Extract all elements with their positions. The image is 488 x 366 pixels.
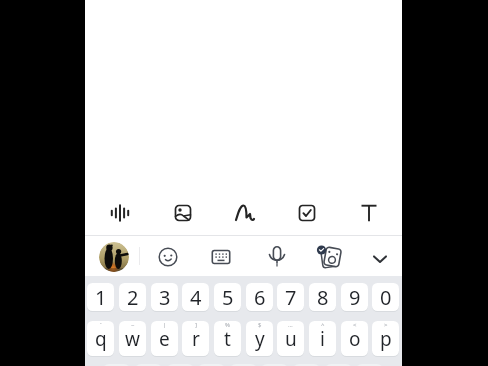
staticText: ]	[195, 321, 197, 329]
button[interactable]: e	[151, 321, 178, 356]
button[interactable]: q	[87, 321, 114, 356]
button[interactable]	[286, 192, 328, 234]
staticText: 8	[317, 284, 329, 311]
button[interactable]: 8	[309, 283, 336, 311]
staticText: q	[95, 326, 107, 352]
staticText: 7	[285, 284, 297, 311]
staticText: 2	[127, 284, 139, 311]
button[interactable]	[261, 364, 288, 366]
button[interactable]	[103, 364, 130, 366]
staticText: ~	[131, 321, 135, 329]
staticText: u	[285, 326, 297, 352]
button[interactable]: y	[246, 321, 273, 356]
button[interactable]	[257, 237, 297, 277]
staticText: 1	[95, 284, 107, 311]
button[interactable]: t	[214, 321, 241, 356]
staticText: 0	[380, 284, 392, 311]
button[interactable]	[224, 192, 266, 234]
staticText: 3	[159, 284, 171, 311]
button[interactable]: 7	[277, 283, 304, 311]
staticText: t	[224, 326, 231, 352]
staticText: 6	[254, 284, 266, 311]
staticText: >	[384, 321, 388, 329]
button[interactable]: 6	[246, 283, 273, 311]
staticText: |	[163, 321, 167, 329]
button[interactable]: 5	[214, 283, 241, 311]
staticText: `	[100, 321, 102, 329]
staticText: r	[192, 326, 200, 352]
staticText: y	[255, 326, 265, 352]
button[interactable]: o	[341, 321, 368, 356]
button[interactable]	[230, 364, 257, 366]
staticText: $	[258, 321, 262, 329]
button[interactable]	[293, 364, 320, 366]
button[interactable]	[198, 364, 225, 366]
button[interactable]	[99, 242, 129, 272]
staticText: 4	[190, 284, 202, 311]
staticText: i	[320, 326, 325, 352]
button[interactable]	[162, 192, 204, 234]
staticText: 5	[222, 284, 234, 311]
button[interactable]: 4	[182, 283, 209, 311]
staticText: e	[159, 326, 170, 352]
button[interactable]: u	[277, 321, 304, 356]
staticText: <	[353, 321, 357, 329]
button[interactable]: w	[119, 321, 146, 356]
staticText: o	[349, 326, 361, 352]
button[interactable]	[201, 237, 241, 277]
button[interactable]	[148, 237, 188, 277]
staticText: p	[380, 326, 392, 352]
button[interactable]	[356, 364, 383, 366]
button[interactable]: 2	[119, 283, 146, 311]
button[interactable]	[325, 364, 352, 366]
staticText: ^	[321, 321, 325, 329]
button[interactable]	[135, 364, 162, 366]
staticText: w	[125, 326, 140, 352]
button[interactable]	[311, 237, 351, 277]
staticText: …	[288, 321, 293, 329]
staticText: %	[225, 321, 230, 329]
button[interactable]	[99, 192, 141, 234]
button[interactable]	[348, 192, 390, 234]
staticText: 9	[349, 284, 361, 311]
button[interactable]	[360, 239, 400, 279]
button[interactable]: r	[182, 321, 209, 356]
button[interactable]: 0	[372, 283, 399, 311]
button[interactable]: i	[309, 321, 336, 356]
button[interactable]: p	[372, 321, 399, 356]
button[interactable]: 1	[87, 283, 114, 311]
button[interactable]	[167, 364, 194, 366]
button[interactable]: 9	[341, 283, 368, 311]
button[interactable]: 3	[151, 283, 178, 311]
